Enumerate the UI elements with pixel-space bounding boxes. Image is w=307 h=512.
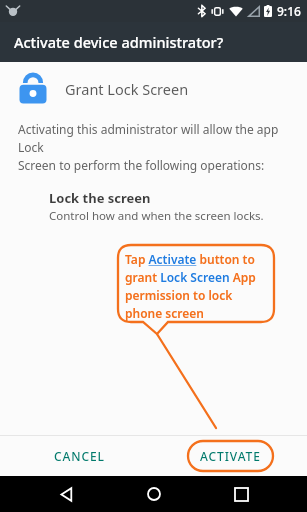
staticText: Lock the screen [49, 189, 151, 207]
staticText: Grant Lock Screen [65, 79, 189, 99]
button[interactable]: Recent apps [223, 476, 259, 512]
button[interactable]: Back [48, 476, 84, 512]
staticText: Activate device administrator? [14, 32, 224, 52]
staticText: Control how and when the screen locks. [49, 208, 264, 224]
staticText: Tap Activate button to grant Lock Screen… [125, 251, 271, 321]
button[interactable]: CANCEL [44, 441, 115, 471]
staticText: Activating this administrator will allow… [18, 121, 299, 174]
button[interactable]: ACTIVATE [188, 441, 273, 471]
staticText: 9:16 [277, 3, 301, 19]
staticText: ACTIVATE [200, 448, 261, 464]
button[interactable]: Home [136, 476, 172, 512]
staticText: CANCEL [54, 448, 105, 464]
